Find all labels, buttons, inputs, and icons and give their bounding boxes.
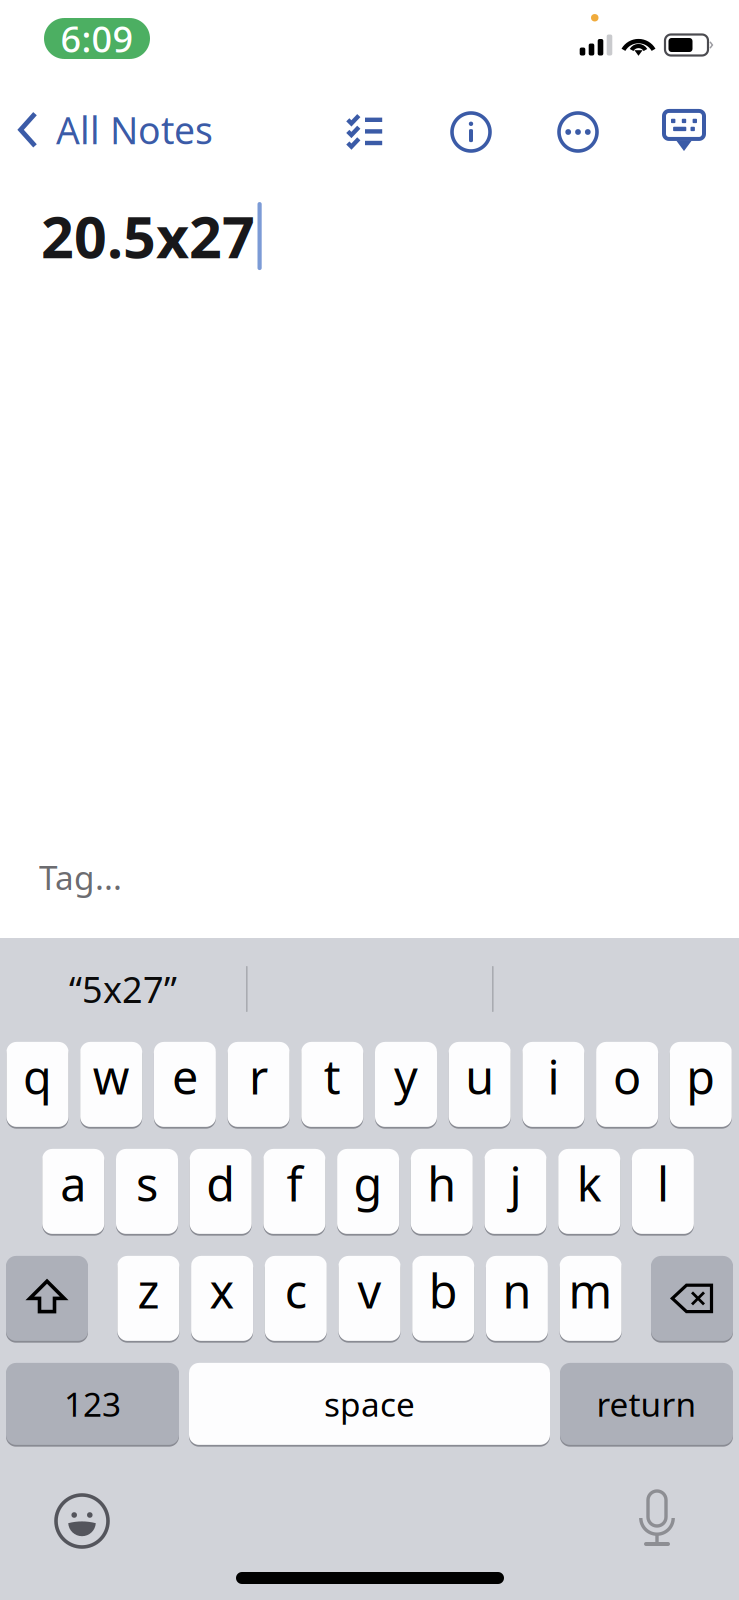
button[interactable]: h	[411, 1148, 473, 1235]
staticText: k	[577, 1152, 602, 1214]
staticText: w	[93, 1045, 130, 1107]
button[interactable]: Emoji	[55, 1494, 109, 1548]
staticText: 123	[64, 1382, 121, 1426]
button[interactable]: l	[632, 1148, 694, 1235]
button[interactable]: k	[558, 1148, 620, 1235]
button[interactable]: Delete	[651, 1255, 733, 1342]
button[interactable]: m	[560, 1255, 622, 1342]
staticText: All Notes	[56, 105, 213, 155]
staticText: c	[285, 1259, 307, 1321]
staticText: 20.5x27	[41, 198, 255, 274]
staticText: j	[509, 1152, 521, 1214]
button[interactable]: c	[265, 1255, 327, 1342]
button[interactable]: v	[338, 1255, 400, 1342]
button[interactable]: x	[191, 1255, 253, 1342]
staticText: n	[502, 1259, 531, 1321]
staticText: l	[657, 1152, 669, 1214]
staticText: p	[686, 1045, 715, 1107]
staticText: e	[172, 1045, 198, 1107]
button[interactable]: 123	[6, 1362, 179, 1446]
button[interactable]: i	[522, 1041, 584, 1128]
button[interactable]: n	[486, 1255, 548, 1342]
button[interactable]: s	[116, 1148, 178, 1235]
staticText: 6:09	[60, 15, 133, 62]
button[interactable]: w	[80, 1041, 142, 1128]
staticText: return	[596, 1382, 696, 1426]
button[interactable]: o	[596, 1041, 658, 1128]
staticText: g	[354, 1152, 383, 1214]
staticText: u	[465, 1045, 494, 1107]
button[interactable]: space	[189, 1362, 550, 1446]
staticText: v	[357, 1259, 381, 1321]
button[interactable]: g	[337, 1148, 399, 1235]
button[interactable]: r	[228, 1041, 290, 1128]
button[interactable]: t	[301, 1041, 363, 1128]
staticText: Tag...	[39, 855, 122, 899]
button[interactable]: Checklist	[333, 99, 397, 157]
button[interactable]: p	[670, 1041, 732, 1128]
button[interactable]: a	[42, 1148, 104, 1235]
staticText: f	[286, 1152, 302, 1214]
staticText: “5x27”	[69, 965, 177, 1013]
button[interactable]: Dictate	[639, 1491, 675, 1547]
staticText: h	[427, 1152, 456, 1214]
staticText: z	[137, 1259, 159, 1321]
staticText: space	[324, 1382, 415, 1426]
button[interactable]: q	[6, 1041, 68, 1128]
staticText: m	[569, 1259, 613, 1321]
button[interactable]: z	[117, 1255, 179, 1342]
button[interactable]: All Notes	[0, 95, 231, 165]
button[interactable]: Shift	[6, 1255, 88, 1342]
staticText: d	[206, 1152, 235, 1214]
staticText: o	[613, 1045, 641, 1107]
staticText: a	[60, 1152, 86, 1214]
staticText: i	[547, 1045, 559, 1107]
staticText: t	[324, 1045, 341, 1107]
button[interactable]: e	[154, 1041, 216, 1128]
staticText: b	[429, 1259, 458, 1321]
button[interactable]: d	[190, 1148, 252, 1235]
button[interactable]: “5x27”	[0, 955, 246, 1023]
button[interactable]: More	[545, 99, 611, 165]
staticText: q	[23, 1045, 52, 1107]
button[interactable]: u	[449, 1041, 511, 1128]
button[interactable]: j	[484, 1148, 546, 1235]
button[interactable]: Hide keyboard	[650, 103, 718, 159]
staticText: r	[249, 1045, 268, 1107]
button[interactable]: f	[263, 1148, 325, 1235]
button[interactable]: y	[375, 1041, 437, 1128]
staticText: x	[210, 1259, 235, 1321]
button[interactable]: b	[412, 1255, 474, 1342]
staticText: y	[394, 1045, 418, 1107]
button[interactable]: Format	[438, 99, 504, 165]
staticText: s	[136, 1152, 158, 1214]
button[interactable]: return	[560, 1362, 733, 1446]
